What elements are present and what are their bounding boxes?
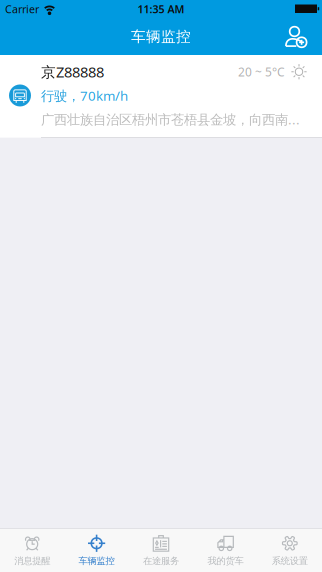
staticText: 我的货车: [207, 555, 243, 567]
staticText: 在途服务: [143, 555, 179, 567]
button[interactable]: 在途服务: [129, 529, 193, 572]
staticText: 车辆监控: [131, 27, 191, 45]
staticText: Carrier: [5, 2, 39, 16]
staticText: 11:35 AM: [137, 2, 184, 16]
button[interactable]: 消息提醒: [0, 529, 64, 572]
button[interactable]: 京Z88888: [0, 55, 322, 137]
staticText: 行驶，70km/h: [41, 87, 128, 104]
button[interactable]: 我的货车: [193, 529, 258, 572]
staticText: 消息提醒: [14, 555, 50, 567]
staticText: 20 ~ 5°C: [238, 64, 285, 80]
staticText: 系统设置: [272, 555, 308, 567]
button[interactable]: 车辆监控: [64, 529, 129, 572]
staticText: 车辆监控: [79, 555, 115, 567]
button[interactable]: Add vehicle: [271, 18, 322, 55]
staticText: 京Z88888: [41, 62, 104, 81]
button[interactable]: 系统设置: [258, 529, 322, 572]
staticText: 广西壮族自治区梧州市苍梧县金坡，向西南...: [41, 110, 300, 128]
